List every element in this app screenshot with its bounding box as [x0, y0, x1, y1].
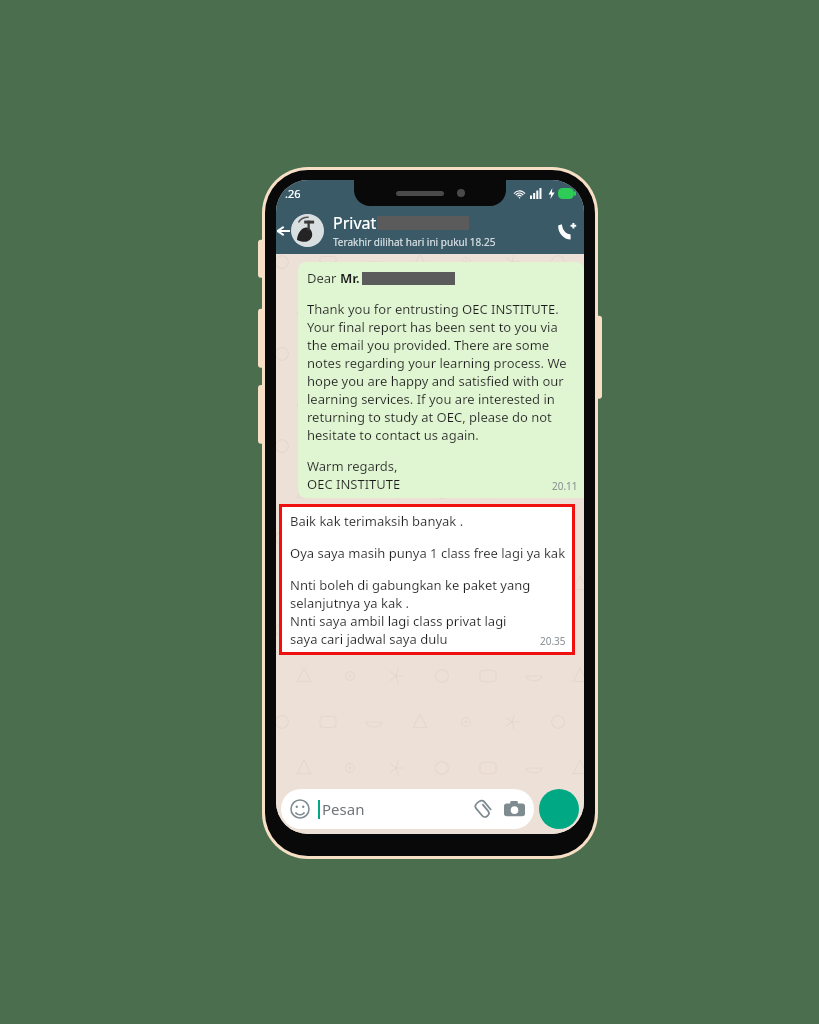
staticText: Nnti saya ambil lagi class privat lagi s…	[290, 612, 536, 648]
button[interactable]: Voice message	[539, 789, 579, 829]
button[interactable]: Camera	[504, 799, 525, 820]
button[interactable]: Emoji	[281, 789, 534, 829]
staticText: OEC INSTITUTE	[307, 475, 401, 493]
staticText: .26	[285, 186, 301, 201]
staticText: Privat	[333, 212, 377, 234]
button[interactable]: Dear	[298, 262, 584, 498]
staticText: Warm regards,	[307, 457, 398, 475]
button[interactable]: Attach	[472, 799, 493, 820]
staticText: Dear	[307, 269, 340, 287]
staticText: Nnti boleh di gabungkan ke paket yang se…	[290, 576, 566, 612]
staticText: Oya saya masih punya 1 class free lagi y…	[290, 544, 566, 562]
staticText: 20.35	[540, 634, 566, 648]
staticText: 20.11	[552, 479, 578, 493]
button[interactable]: Emoji	[290, 799, 310, 819]
button[interactable]: Profile photo	[291, 214, 324, 247]
staticText: Mr.	[340, 269, 360, 287]
staticText: Thank you for entrusting OEC INSTITUTE. …	[307, 300, 578, 444]
staticText: Baik kak terimaksih banyak .	[290, 512, 464, 530]
staticText: Pesan	[322, 799, 472, 819]
button[interactable]: Back	[276, 207, 584, 254]
button[interactable]: Add call	[550, 207, 584, 254]
staticText: Terakhir dilihat hari ini pukul 18.25	[333, 235, 496, 249]
button[interactable]: Baik kak terimaksih banyak .	[279, 504, 575, 655]
button[interactable]: Back	[276, 207, 290, 254]
